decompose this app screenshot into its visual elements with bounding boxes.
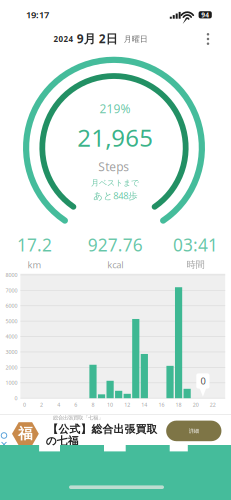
staticText: 時間	[186, 259, 204, 270]
staticText: 17.2	[17, 233, 52, 256]
button[interactable]: Share	[0, 0, 231, 500]
staticText: 8000	[6, 271, 18, 278]
staticText: 1000	[6, 379, 18, 386]
staticText: 16	[158, 401, 164, 408]
staticText: 18	[176, 401, 182, 408]
staticText: 【公式】総合出張買取	[47, 423, 157, 436]
staticText: 19:17	[26, 8, 49, 21]
staticText: 14	[141, 401, 147, 408]
staticText: 5000	[6, 318, 18, 325]
staticText: 2000	[6, 364, 18, 371]
staticText: 21,965	[77, 122, 153, 153]
staticText: 詳細	[189, 428, 199, 434]
staticText: 2024	[53, 34, 73, 44]
staticText: 6	[74, 401, 77, 408]
staticText: 7000	[6, 287, 18, 294]
staticText: 9月 2日	[77, 30, 118, 46]
staticText: 月ベストまで	[91, 178, 139, 188]
staticText: 10	[107, 401, 113, 408]
button[interactable]: 福	[0, 0, 231, 500]
staticText: Steps	[98, 158, 129, 174]
button[interactable]: More options	[0, 0, 231, 500]
staticText: 月曜日	[124, 34, 148, 44]
staticText: あと848歩	[93, 189, 137, 202]
staticText: 219%	[99, 101, 130, 116]
staticText: km	[27, 258, 41, 271]
staticText: 03:41	[173, 233, 218, 256]
button[interactable]: Ranking	[0, 0, 231, 500]
staticText: 94	[201, 10, 209, 19]
button[interactable]: Calendar	[0, 0, 231, 500]
staticText: 2	[40, 401, 43, 408]
staticText: 0	[200, 375, 205, 387]
staticText: 0	[15, 395, 18, 402]
staticText: 4000	[6, 333, 18, 340]
staticText: 12	[124, 401, 130, 408]
staticText: 総合出張買取「七福」	[53, 414, 103, 421]
button[interactable]: 詳細	[0, 0, 231, 500]
button[interactable]: Settings	[0, 0, 231, 500]
staticText: 8	[91, 401, 94, 408]
staticText: 22	[210, 401, 216, 408]
staticText: kcal	[107, 258, 123, 271]
staticText: 927.76	[88, 233, 143, 256]
staticText: 0	[23, 401, 26, 408]
staticText: の七福	[46, 434, 79, 447]
staticText: 4	[57, 401, 60, 408]
staticText: 3000	[6, 348, 18, 355]
staticText: 20	[193, 401, 199, 408]
staticText: 6000	[6, 302, 18, 309]
staticText: 福	[18, 424, 33, 442]
